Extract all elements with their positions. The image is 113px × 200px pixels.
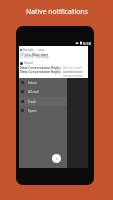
button[interactable]: Spam: [19, 106, 67, 115]
staticText: 17:56p: [20, 52, 31, 57]
staticText: Native notifications: [26, 7, 88, 16]
staticText: Trash: [28, 100, 37, 104]
staticText: another test conversation: [63, 69, 89, 77]
staticText: All mail: [28, 90, 39, 94]
staticText: Inbox: [28, 81, 37, 85]
button[interactable]: All mail: [19, 87, 67, 96]
staticText: New Conversation Reply:: [20, 65, 62, 69]
staticText: 9:30: [83, 41, 91, 45]
staticText: this is a test conversation: [63, 65, 89, 73]
button[interactable]: Inbox: [19, 78, 67, 87]
staticText: 11:00 PM Thursday: [20, 55, 49, 59]
staticText: New time: [32, 52, 49, 57]
button[interactable]: Compose: [52, 154, 61, 163]
staticText: Gmail: [24, 61, 33, 65]
staticText: Google · now: [23, 48, 45, 52]
staticText: New Conversation Reply:: [20, 69, 62, 73]
staticText: Spam: [28, 109, 37, 113]
button[interactable]: Trash: [19, 97, 67, 106]
